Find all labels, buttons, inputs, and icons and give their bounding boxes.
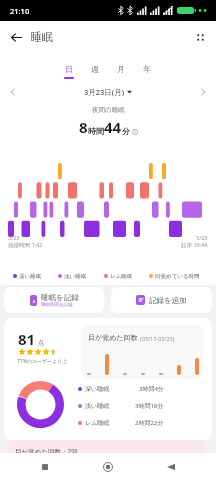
button[interactable]: 目が覚めた回数: [82, 325, 204, 379]
staticText: 深い睡眠: [19, 273, 42, 280]
staticText: 睡眠を記録: [41, 293, 79, 302]
staticText: 目が覚めた回数：2回: [15, 447, 78, 453]
button[interactable]: 日: [56, 60, 82, 80]
staticText: 深い睡眠: [85, 385, 110, 393]
button[interactable]: Previous day: [6, 85, 20, 99]
button[interactable]: レム睡眠: [78, 416, 208, 430]
button[interactable]: Back: [4, 25, 28, 49]
button[interactable]: 週: [82, 60, 108, 80]
staticText: 21:10: [10, 6, 30, 16]
staticText: レム睡眠: [110, 273, 133, 280]
staticText: 3時間18分: [135, 402, 164, 410]
staticText: 睡眠: [31, 30, 53, 44]
button[interactable]: 深い睡眠: [78, 382, 208, 396]
staticText: 月: [117, 64, 125, 74]
staticText: 記録を追加: [149, 296, 187, 305]
staticText: 3/23: [196, 234, 208, 241]
button[interactable]: 3月23日(月): [84, 87, 132, 97]
button[interactable]: Recent apps: [34, 456, 56, 478]
button[interactable]: 睡眠を記録: [4, 287, 104, 313]
staticText: 年: [143, 64, 151, 74]
staticText: 夜間の睡眠: [92, 106, 125, 114]
button[interactable]: レム睡眠: [104, 270, 133, 282]
button[interactable]: 81: [4, 318, 212, 440]
button[interactable]: 月: [108, 60, 134, 80]
button[interactable]: 記録を追加: [111, 287, 212, 313]
button[interactable]: 目が覚めた回数：2回: [7, 440, 205, 453]
button[interactable]: Back: [160, 456, 182, 478]
staticText: 浅い睡眠: [85, 402, 110, 410]
staticText: 浅い睡眠: [64, 273, 87, 280]
staticText: 3月23日(月): [84, 87, 125, 97]
staticText: 週: [91, 64, 99, 74]
staticText: 3時間4分: [139, 385, 164, 393]
staticText: 2時間22分: [135, 419, 164, 427]
button[interactable]: 浅い睡眠: [58, 270, 87, 282]
button[interactable]: Next day: [196, 85, 210, 99]
staticText: 8: [79, 117, 88, 137]
staticText: 日: [65, 64, 73, 74]
staticText: (03/17-03/23): [140, 335, 175, 342]
staticText: 点: [38, 339, 45, 347]
staticText: 就寝時間 1:42: [8, 241, 43, 249]
staticText: レム睡眠: [85, 419, 110, 427]
button[interactable]: 深い睡眠: [13, 270, 42, 282]
staticText: 3/23: [8, 234, 20, 241]
staticText: 分: [122, 126, 130, 136]
staticText: 81: [18, 329, 36, 349]
staticText: 目が覚めた回数: [88, 333, 138, 342]
button[interactable]: 年: [134, 60, 160, 80]
staticText: 77%のユーザーより上: [17, 358, 68, 365]
button[interactable]: More options: [188, 25, 212, 49]
button[interactable]: 浅い睡眠: [78, 399, 208, 413]
button[interactable]: Home: [97, 456, 119, 478]
button[interactable]: 目覚めている時間: [149, 270, 200, 282]
staticText: 目覚めている時間: [155, 273, 200, 280]
staticText: 起床 10:44: [181, 241, 208, 249]
staticText: 時間: [88, 126, 104, 136]
staticText: 44: [104, 117, 122, 137]
staticText: 睡眠時間を記録: [41, 302, 73, 308]
